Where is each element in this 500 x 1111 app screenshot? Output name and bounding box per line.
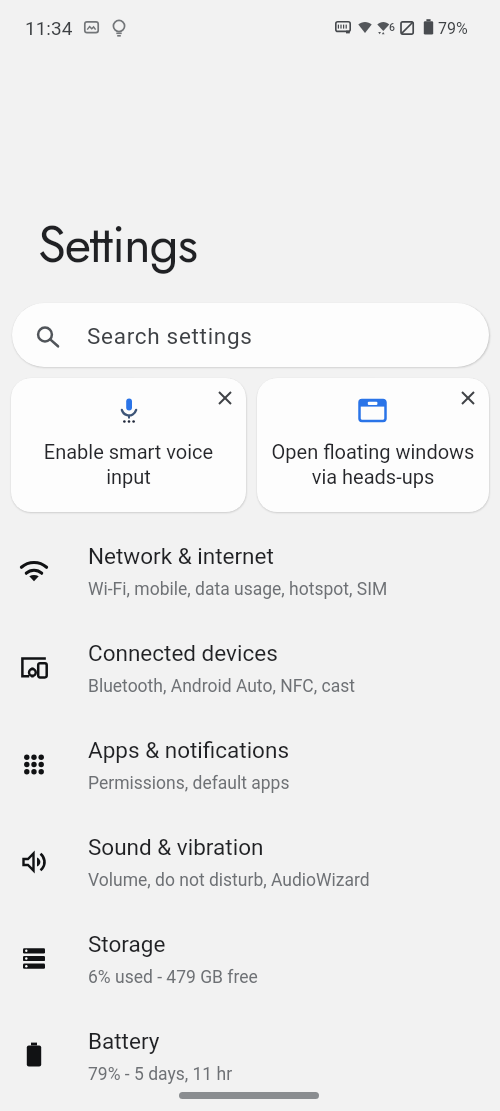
staticText: 6 bbox=[389, 21, 395, 33]
button[interactable] bbox=[461, 391, 475, 405]
staticText: Wi-Fi, mobile, data usage, hotspot, SIM bbox=[88, 579, 388, 600]
staticText: 79% bbox=[438, 19, 468, 38]
button[interactable]: Battery bbox=[0, 1010, 500, 1107]
staticText: Storage bbox=[88, 931, 166, 957]
button[interactable]: Connected devices bbox=[0, 622, 500, 719]
button[interactable]: Enable smart voice input bbox=[11, 378, 246, 512]
staticText: Connected devices bbox=[88, 640, 278, 666]
staticText: Enable smart voice input bbox=[11, 440, 246, 489]
staticText: Battery bbox=[88, 1028, 160, 1054]
button[interactable]: Sound & vibration bbox=[0, 816, 500, 913]
button[interactable]: Network & internet bbox=[0, 525, 500, 622]
staticText: Search settings bbox=[87, 323, 253, 349]
button[interactable]: Storage bbox=[0, 913, 500, 1010]
staticText: Network & internet bbox=[88, 543, 274, 569]
staticText: Open floating windows via heads-ups bbox=[257, 440, 489, 489]
staticText: Settings bbox=[38, 207, 197, 281]
staticText: Permissions, default apps bbox=[88, 773, 290, 794]
staticText: Bluetooth, Android Auto, NFC, cast bbox=[88, 676, 355, 697]
button[interactable]: Search settings bbox=[12, 303, 489, 367]
staticText: Sound & vibration bbox=[88, 834, 264, 860]
button[interactable]: Open floating windows via heads-ups bbox=[257, 378, 489, 512]
button[interactable] bbox=[218, 391, 232, 405]
staticText: 79% - 5 days, 11 hr bbox=[88, 1064, 233, 1085]
staticText: 11:34 bbox=[25, 17, 73, 39]
staticText: Volume, do not disturb, AudioWizard bbox=[88, 870, 370, 891]
staticText: 6% used - 479 GB free bbox=[88, 967, 258, 988]
button[interactable]: Apps & notifications bbox=[0, 719, 500, 816]
staticText: Apps & notifications bbox=[88, 737, 289, 763]
